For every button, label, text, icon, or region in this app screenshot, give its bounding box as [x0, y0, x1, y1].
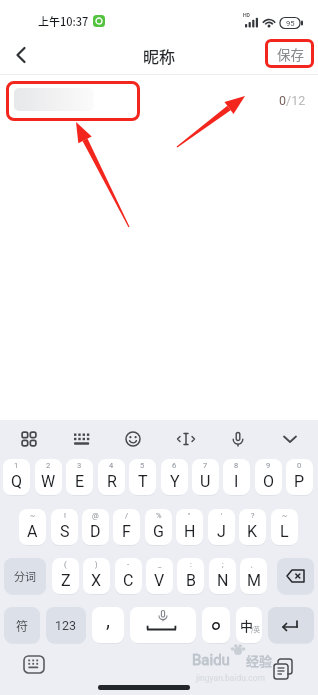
staticText: 6 — [172, 461, 177, 470]
staticText: E — [75, 472, 85, 491]
button[interactable] — [277, 558, 314, 594]
button[interactable]: 9 — [255, 459, 282, 495]
staticText: @ — [92, 511, 99, 520]
staticText: " — [188, 511, 191, 520]
button[interactable] — [280, 431, 300, 447]
staticText: /英 — [251, 624, 261, 633]
button[interactable]: ( — [52, 558, 79, 594]
staticText: G — [153, 522, 164, 541]
staticText: 昵称 — [143, 44, 176, 66]
button[interactable]: ~ — [19, 509, 46, 545]
staticText: ~ — [282, 511, 288, 520]
staticText: O — [263, 472, 275, 491]
button[interactable]: / — [113, 509, 140, 545]
staticText: ~ — [30, 511, 36, 520]
staticText: 8 — [234, 461, 239, 470]
staticText: Y — [170, 472, 180, 491]
button[interactable]: ! — [51, 509, 78, 545]
staticText: 保存 — [277, 44, 304, 64]
button[interactable]: 1 — [3, 459, 30, 495]
button[interactable] — [270, 657, 298, 683]
button[interactable] — [18, 431, 40, 447]
button[interactable]: ; — [209, 558, 236, 594]
staticText: U — [200, 472, 211, 491]
button[interactable]: 8 — [223, 459, 250, 495]
staticText: D — [90, 522, 101, 541]
button[interactable]: % — [145, 509, 172, 545]
button[interactable]: 2 — [35, 459, 62, 495]
staticText: X — [91, 571, 102, 590]
button[interactable]: " — [176, 509, 203, 545]
staticText: 9 — [266, 461, 271, 470]
button[interactable]: : — [177, 558, 204, 594]
button[interactable]: 7 — [192, 459, 219, 495]
staticText: 0 — [297, 461, 302, 470]
button[interactable]: 中 — [236, 607, 262, 643]
staticText: 经验 — [246, 651, 273, 669]
staticText: K — [247, 522, 258, 541]
button[interactable]: ? — [239, 509, 266, 545]
button[interactable] — [268, 607, 314, 643]
staticText: 3 — [77, 461, 82, 470]
button[interactable]: 4 — [98, 459, 125, 495]
staticText: Z — [61, 571, 71, 590]
staticText: T — [138, 472, 148, 491]
button[interactable] — [22, 653, 46, 677]
button[interactable] — [174, 431, 198, 447]
button[interactable] — [70, 431, 92, 447]
button[interactable]: 123 — [46, 607, 86, 643]
button[interactable] — [6, 81, 140, 121]
staticText: J — [217, 522, 226, 541]
staticText: V — [154, 571, 165, 590]
button[interactable]: 分词 — [4, 558, 46, 594]
staticText: N — [217, 571, 229, 590]
button[interactable]: ~ — [271, 509, 298, 545]
staticText: 5 — [140, 461, 145, 470]
staticText: ! — [64, 511, 66, 520]
button[interactable]: ) — [83, 558, 110, 594]
staticText: ) — [95, 560, 98, 569]
button[interactable]: @ — [82, 509, 109, 545]
staticText: A — [27, 522, 38, 541]
staticText: ' — [221, 511, 223, 520]
button[interactable] — [122, 431, 144, 447]
button[interactable]: _ — [146, 558, 173, 594]
button[interactable] — [202, 607, 230, 643]
button[interactable] — [8, 42, 34, 68]
staticText: ; — [222, 560, 224, 569]
staticText: ? — [251, 511, 255, 520]
staticText: Baidu — [192, 651, 230, 669]
staticText: 中 — [240, 616, 254, 635]
staticText: I — [234, 472, 239, 491]
button[interactable]: 3 — [66, 459, 93, 495]
button[interactable]: 符 — [4, 607, 40, 643]
button[interactable]: - — [115, 558, 142, 594]
staticText: C — [123, 571, 134, 590]
staticText: 95 — [286, 19, 295, 28]
button[interactable]: 6 — [161, 459, 188, 495]
staticText: 1 — [14, 461, 19, 470]
staticText: _ — [158, 560, 162, 569]
staticText: ( — [64, 560, 67, 569]
button[interactable] — [228, 431, 248, 447]
staticText: Q — [11, 472, 23, 491]
button[interactable]: ' — [208, 509, 235, 545]
button[interactable] — [130, 607, 196, 643]
staticText: : — [190, 560, 192, 569]
staticText: 4 — [109, 461, 114, 470]
staticText: P — [294, 472, 305, 491]
staticText: F — [122, 522, 131, 541]
button[interactable]: , — [92, 607, 124, 643]
staticText: 2 — [46, 461, 51, 470]
staticText: % — [156, 511, 162, 520]
staticText: S — [60, 522, 70, 541]
staticText: - — [127, 560, 130, 569]
button[interactable]: 、 — [240, 558, 267, 594]
staticText: 0/12 — [279, 93, 306, 108]
button[interactable]: 保存 — [268, 42, 312, 66]
button[interactable]: 0 — [286, 459, 313, 495]
button[interactable]: 5 — [129, 459, 156, 495]
staticText: M — [247, 571, 261, 590]
staticText: HD — [243, 12, 250, 18]
staticText: R — [107, 472, 117, 491]
